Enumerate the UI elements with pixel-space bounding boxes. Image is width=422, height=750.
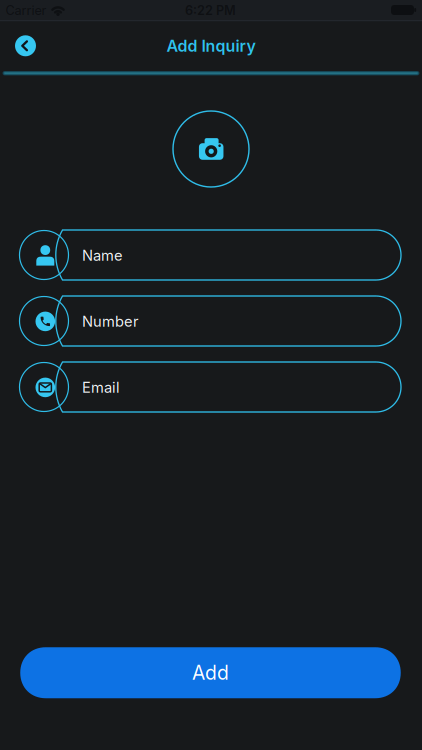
staticText: Name <box>82 247 123 264</box>
button[interactable]: Back <box>15 35 36 56</box>
button[interactable]: Email <box>20 362 402 412</box>
button[interactable]: Add <box>20 647 401 698</box>
staticText: Number <box>82 313 139 330</box>
staticText: Carrier <box>5 3 46 18</box>
staticText: 6:22 PM <box>185 3 236 18</box>
button[interactable]: Number <box>20 296 402 346</box>
staticText: Add <box>192 661 229 684</box>
button[interactable]: Add photo <box>173 111 249 187</box>
staticText: Email <box>82 379 120 396</box>
button[interactable]: Name <box>20 230 402 280</box>
staticText: Add Inquiry <box>166 36 255 56</box>
